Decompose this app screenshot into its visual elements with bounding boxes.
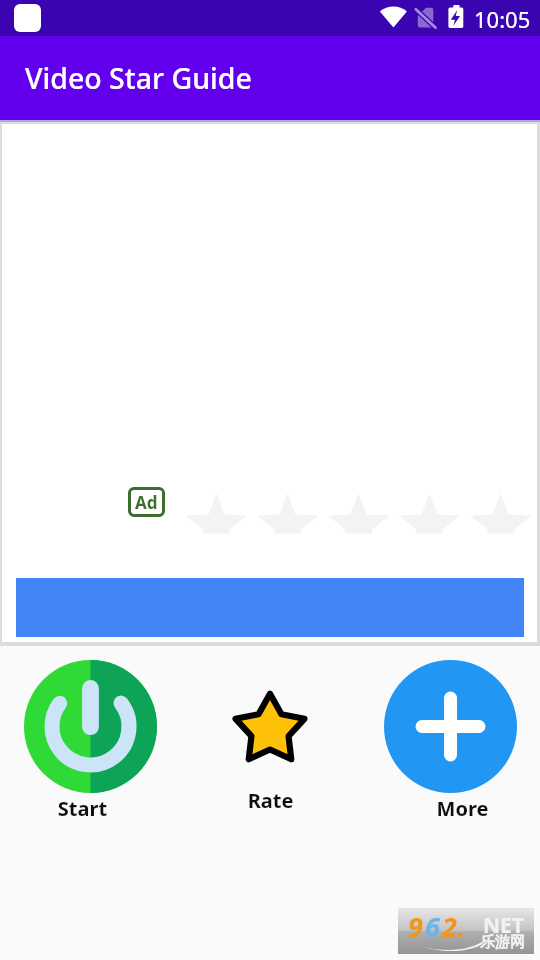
staticText: Video Star Guide: [25, 59, 252, 98]
staticText: 6: [425, 908, 440, 945]
button[interactable]: Ad: [128, 487, 165, 517]
staticText: 9: [408, 908, 423, 945]
button[interactable]: Rate: [225, 680, 315, 815]
staticText: 乐游网: [480, 933, 525, 952]
staticText: Ad: [135, 491, 158, 514]
button[interactable]: Start: [18, 658, 163, 818]
staticText: More: [382, 795, 540, 822]
staticText: NET: [483, 911, 524, 940]
staticText: Rate: [190, 787, 351, 814]
staticText: Start: [2, 795, 163, 822]
staticText: 2.: [442, 908, 465, 945]
staticText: 10:05: [474, 4, 531, 34]
button[interactable]: More: [382, 658, 526, 818]
